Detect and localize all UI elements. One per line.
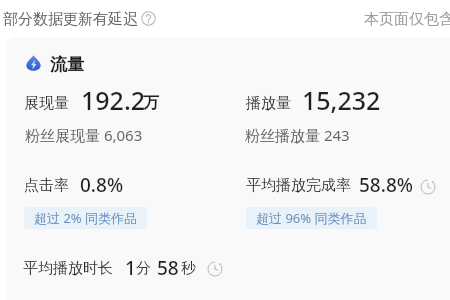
button[interactable]: 超过 2% 同类作品 [24,207,147,229]
staticText: 流量 [50,54,84,75]
button[interactable]: Help [141,11,156,26]
staticText: 平均播放时长 [23,259,113,278]
staticText: 秒 [181,259,196,278]
staticText: 192.2 [81,83,146,117]
staticText: 58.8% [359,172,413,198]
staticText: 15,232 [302,83,381,117]
staticText: 粉丝展现量 6,063 [25,125,143,145]
staticText: 1 [125,255,136,281]
staticText: 本页面仅包含 [364,10,450,29]
staticText: 0.8% [80,172,124,198]
button[interactable]: 超过 96% 同类作品 [246,207,377,229]
staticText: 超过 2% 同类作品 [34,209,137,227]
staticText: 分 [136,259,151,278]
staticText: 平均播放完成率 [246,176,351,195]
staticText: 58 [157,255,179,281]
staticText: 播放量 [246,94,291,113]
staticText: 点击率 [24,176,69,195]
staticText: 粉丝播放量 243 [245,125,350,145]
staticText: 万 [143,93,159,113]
staticText: 展现量 [24,94,69,113]
staticText: 部分数据更新有延迟 [3,10,138,29]
staticText: 超过 96% 同类作品 [256,209,367,227]
